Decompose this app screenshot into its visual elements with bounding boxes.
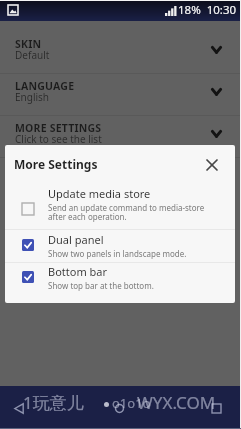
button[interactable]: Home (108, 397, 130, 419)
staticText: Click to see the list (15, 132, 102, 146)
staticText: 1玩意儿 (23, 391, 84, 414)
staticText: SKIN (15, 37, 42, 51)
button[interactable]: Update media store (5, 183, 235, 228)
button[interactable]: Close (199, 152, 225, 178)
staticText: Show two panels in landscape mode. (48, 248, 187, 259)
button[interactable]: Bottom bar (5, 261, 235, 293)
staticText: Dual panel (48, 232, 104, 247)
staticText: LANGUAGE (15, 79, 75, 93)
staticText: MORE SETTINGS (15, 121, 102, 135)
staticText: Show top bar at the bottom. (48, 280, 154, 291)
staticText: English (15, 90, 50, 104)
staticText: Default (15, 48, 50, 62)
staticText: Bottom bar (48, 264, 108, 279)
staticText: More Settings (14, 156, 98, 172)
button[interactable]: SKIN (0, 32, 241, 74)
staticText: Send an update command to media-store af… (48, 202, 205, 223)
button[interactable]: MORE SETTINGS (0, 116, 241, 158)
button[interactable]: LANGUAGE (0, 74, 241, 116)
button[interactable]: Recents (205, 397, 227, 419)
staticText: o1o1o (112, 394, 151, 412)
button[interactable]: Back (8, 397, 30, 419)
button[interactable]: Dual panel (5, 229, 235, 261)
staticText: Update media store (48, 186, 151, 201)
staticText: 18% 10:30 (178, 2, 237, 18)
staticText: WYX.COM (137, 391, 216, 414)
